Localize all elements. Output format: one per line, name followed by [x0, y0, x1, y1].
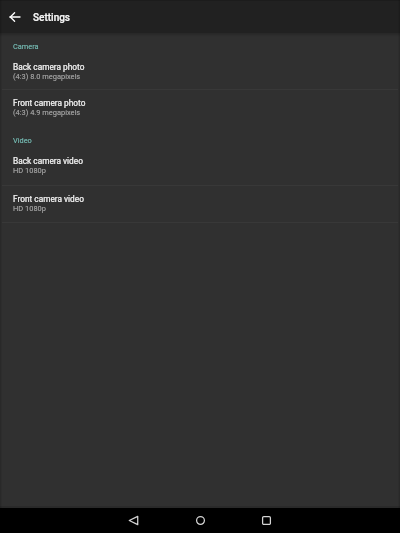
staticText: Video	[13, 136, 32, 145]
staticText: Back camera video	[13, 156, 83, 166]
button[interactable]: Back camera photo	[0, 58, 400, 94]
staticText: HD 1080p	[13, 204, 46, 213]
staticText: Settings	[33, 12, 71, 24]
staticText: Front camera photo	[13, 98, 86, 108]
staticText: Back camera photo	[13, 62, 85, 72]
button[interactable]: Front camera photo	[0, 94, 400, 130]
button[interactable]: Navigate up	[5, 7, 24, 26]
staticText: (4:3) 4.9 megapixels	[13, 108, 81, 117]
staticText: (4:3) 8.0 megapixels	[13, 72, 81, 81]
button[interactable]: Back camera video	[0, 152, 400, 188]
button[interactable]: Front camera video	[0, 190, 400, 226]
staticText: Front camera video	[13, 194, 84, 204]
button[interactable]: Home	[167, 508, 233, 533]
button[interactable]: Back	[100, 508, 166, 533]
staticText: Camera	[13, 42, 39, 51]
button[interactable]: Recent apps	[233, 508, 299, 533]
staticText: HD 1080p	[13, 166, 46, 175]
